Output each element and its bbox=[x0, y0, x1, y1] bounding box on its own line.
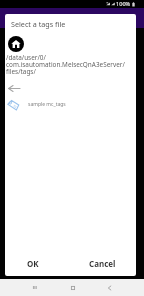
button[interactable]: Recent apps bbox=[27, 280, 42, 295]
button[interactable]: sample mc_tags bbox=[5, 98, 136, 111]
staticText: sample mc_tags bbox=[28, 101, 66, 108]
button[interactable]: Cancel bbox=[85, 254, 120, 273]
staticText: /data/user/0/com.isautomation.MelsecQnA3… bbox=[6, 53, 134, 76]
button[interactable]: Back bbox=[102, 280, 117, 295]
staticText: Cancel bbox=[89, 258, 116, 269]
button[interactable]: Home directory bbox=[8, 36, 24, 52]
staticText: OK bbox=[27, 258, 39, 269]
button[interactable]: Home bbox=[65, 280, 80, 295]
button[interactable]: Up one level bbox=[5, 83, 136, 94]
staticText: 100% bbox=[116, 0, 131, 8]
button[interactable]: OK bbox=[23, 254, 43, 273]
staticText: Select a tags file bbox=[11, 19, 66, 29]
